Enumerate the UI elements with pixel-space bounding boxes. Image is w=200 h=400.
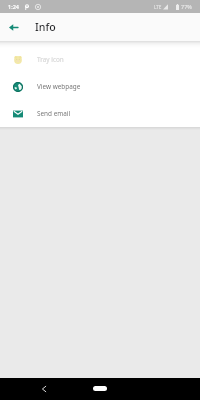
button[interactable]: Tray icon (0, 46, 200, 73)
staticText: Tray icon (37, 55, 64, 64)
staticText: 77% (181, 3, 192, 10)
button[interactable]: View webpage (0, 73, 200, 100)
button[interactable]: Back (38, 383, 49, 394)
button[interactable]: Send email (0, 100, 200, 127)
staticText: LTE (154, 4, 162, 10)
staticText: Info (35, 20, 56, 34)
staticText: View webpage (37, 82, 81, 91)
button[interactable]: Home (88, 382, 112, 394)
staticText: Send email (37, 109, 71, 118)
button[interactable]: Back (0, 14, 27, 41)
staticText: 1:24 (8, 3, 19, 10)
